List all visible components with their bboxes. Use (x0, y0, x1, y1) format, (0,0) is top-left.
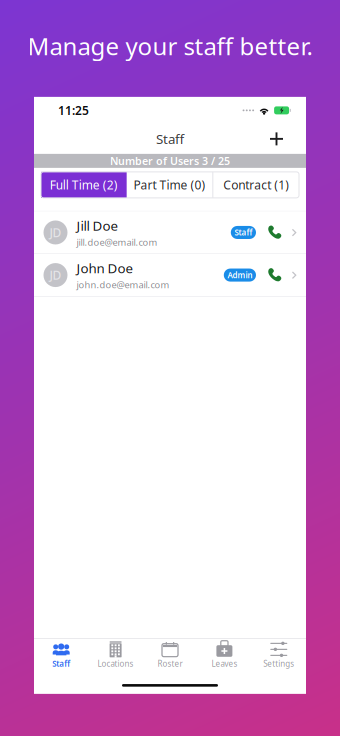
staticText: JD (49, 267, 61, 283)
button[interactable]: Roster (143, 638, 197, 673)
button[interactable]: JD (34, 254, 306, 296)
button[interactable]: Contract (1) (213, 172, 299, 198)
staticText: Jill Doe (76, 217, 118, 234)
staticText: Locations (98, 658, 134, 669)
button[interactable]: Add staff member (264, 126, 289, 151)
button[interactable]: Settings (252, 638, 306, 673)
staticText: JD (49, 224, 61, 240)
button[interactable]: Part Time (0) (127, 172, 212, 198)
staticText: Manage your staff better. (27, 30, 312, 62)
staticText: Roster (157, 658, 182, 669)
staticText: Full Time (2) (50, 177, 118, 193)
staticText: Part Time (0) (133, 177, 205, 193)
staticText: Leaves (211, 658, 237, 669)
staticText: Number of Users 3 / 25 (110, 154, 230, 168)
staticText: Contract (1) (223, 177, 289, 193)
staticText: John Doe (76, 259, 133, 277)
staticText: Admin (227, 270, 252, 280)
button[interactable]: Staff (34, 638, 88, 673)
button[interactable]: Full Time (2) (41, 172, 127, 198)
button[interactable]: Leaves (197, 638, 252, 673)
staticText: john.doe@email.com (76, 278, 169, 291)
staticText: Settings (263, 658, 294, 669)
staticText: Staff (234, 227, 252, 238)
button[interactable]: JD (34, 211, 306, 253)
button[interactable]: Locations (88, 638, 143, 673)
staticText: Staff (52, 658, 70, 669)
staticText: jill.doe@email.com (76, 236, 157, 248)
staticText: 11:25 (58, 102, 89, 118)
staticText: Staff (156, 130, 184, 148)
